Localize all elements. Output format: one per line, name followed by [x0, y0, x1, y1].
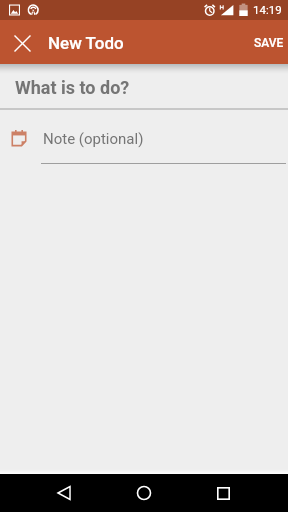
button[interactable]: Close: [8, 28, 36, 56]
staticText: SAVE: [254, 36, 284, 50]
staticText: What is to do?: [15, 77, 130, 98]
staticText: 14:19: [253, 3, 282, 16]
button[interactable]: Back: [40, 474, 88, 512]
button[interactable]: Recents: [199, 474, 247, 512]
button[interactable]: Home: [120, 474, 168, 512]
button[interactable]: What is to do?: [0, 64, 288, 108]
button[interactable]: Note (optional): [0, 110, 288, 164]
staticText: Note (optional): [43, 130, 144, 148]
staticText: New Todo: [48, 33, 124, 53]
button[interactable]: SAVE: [246, 25, 288, 59]
